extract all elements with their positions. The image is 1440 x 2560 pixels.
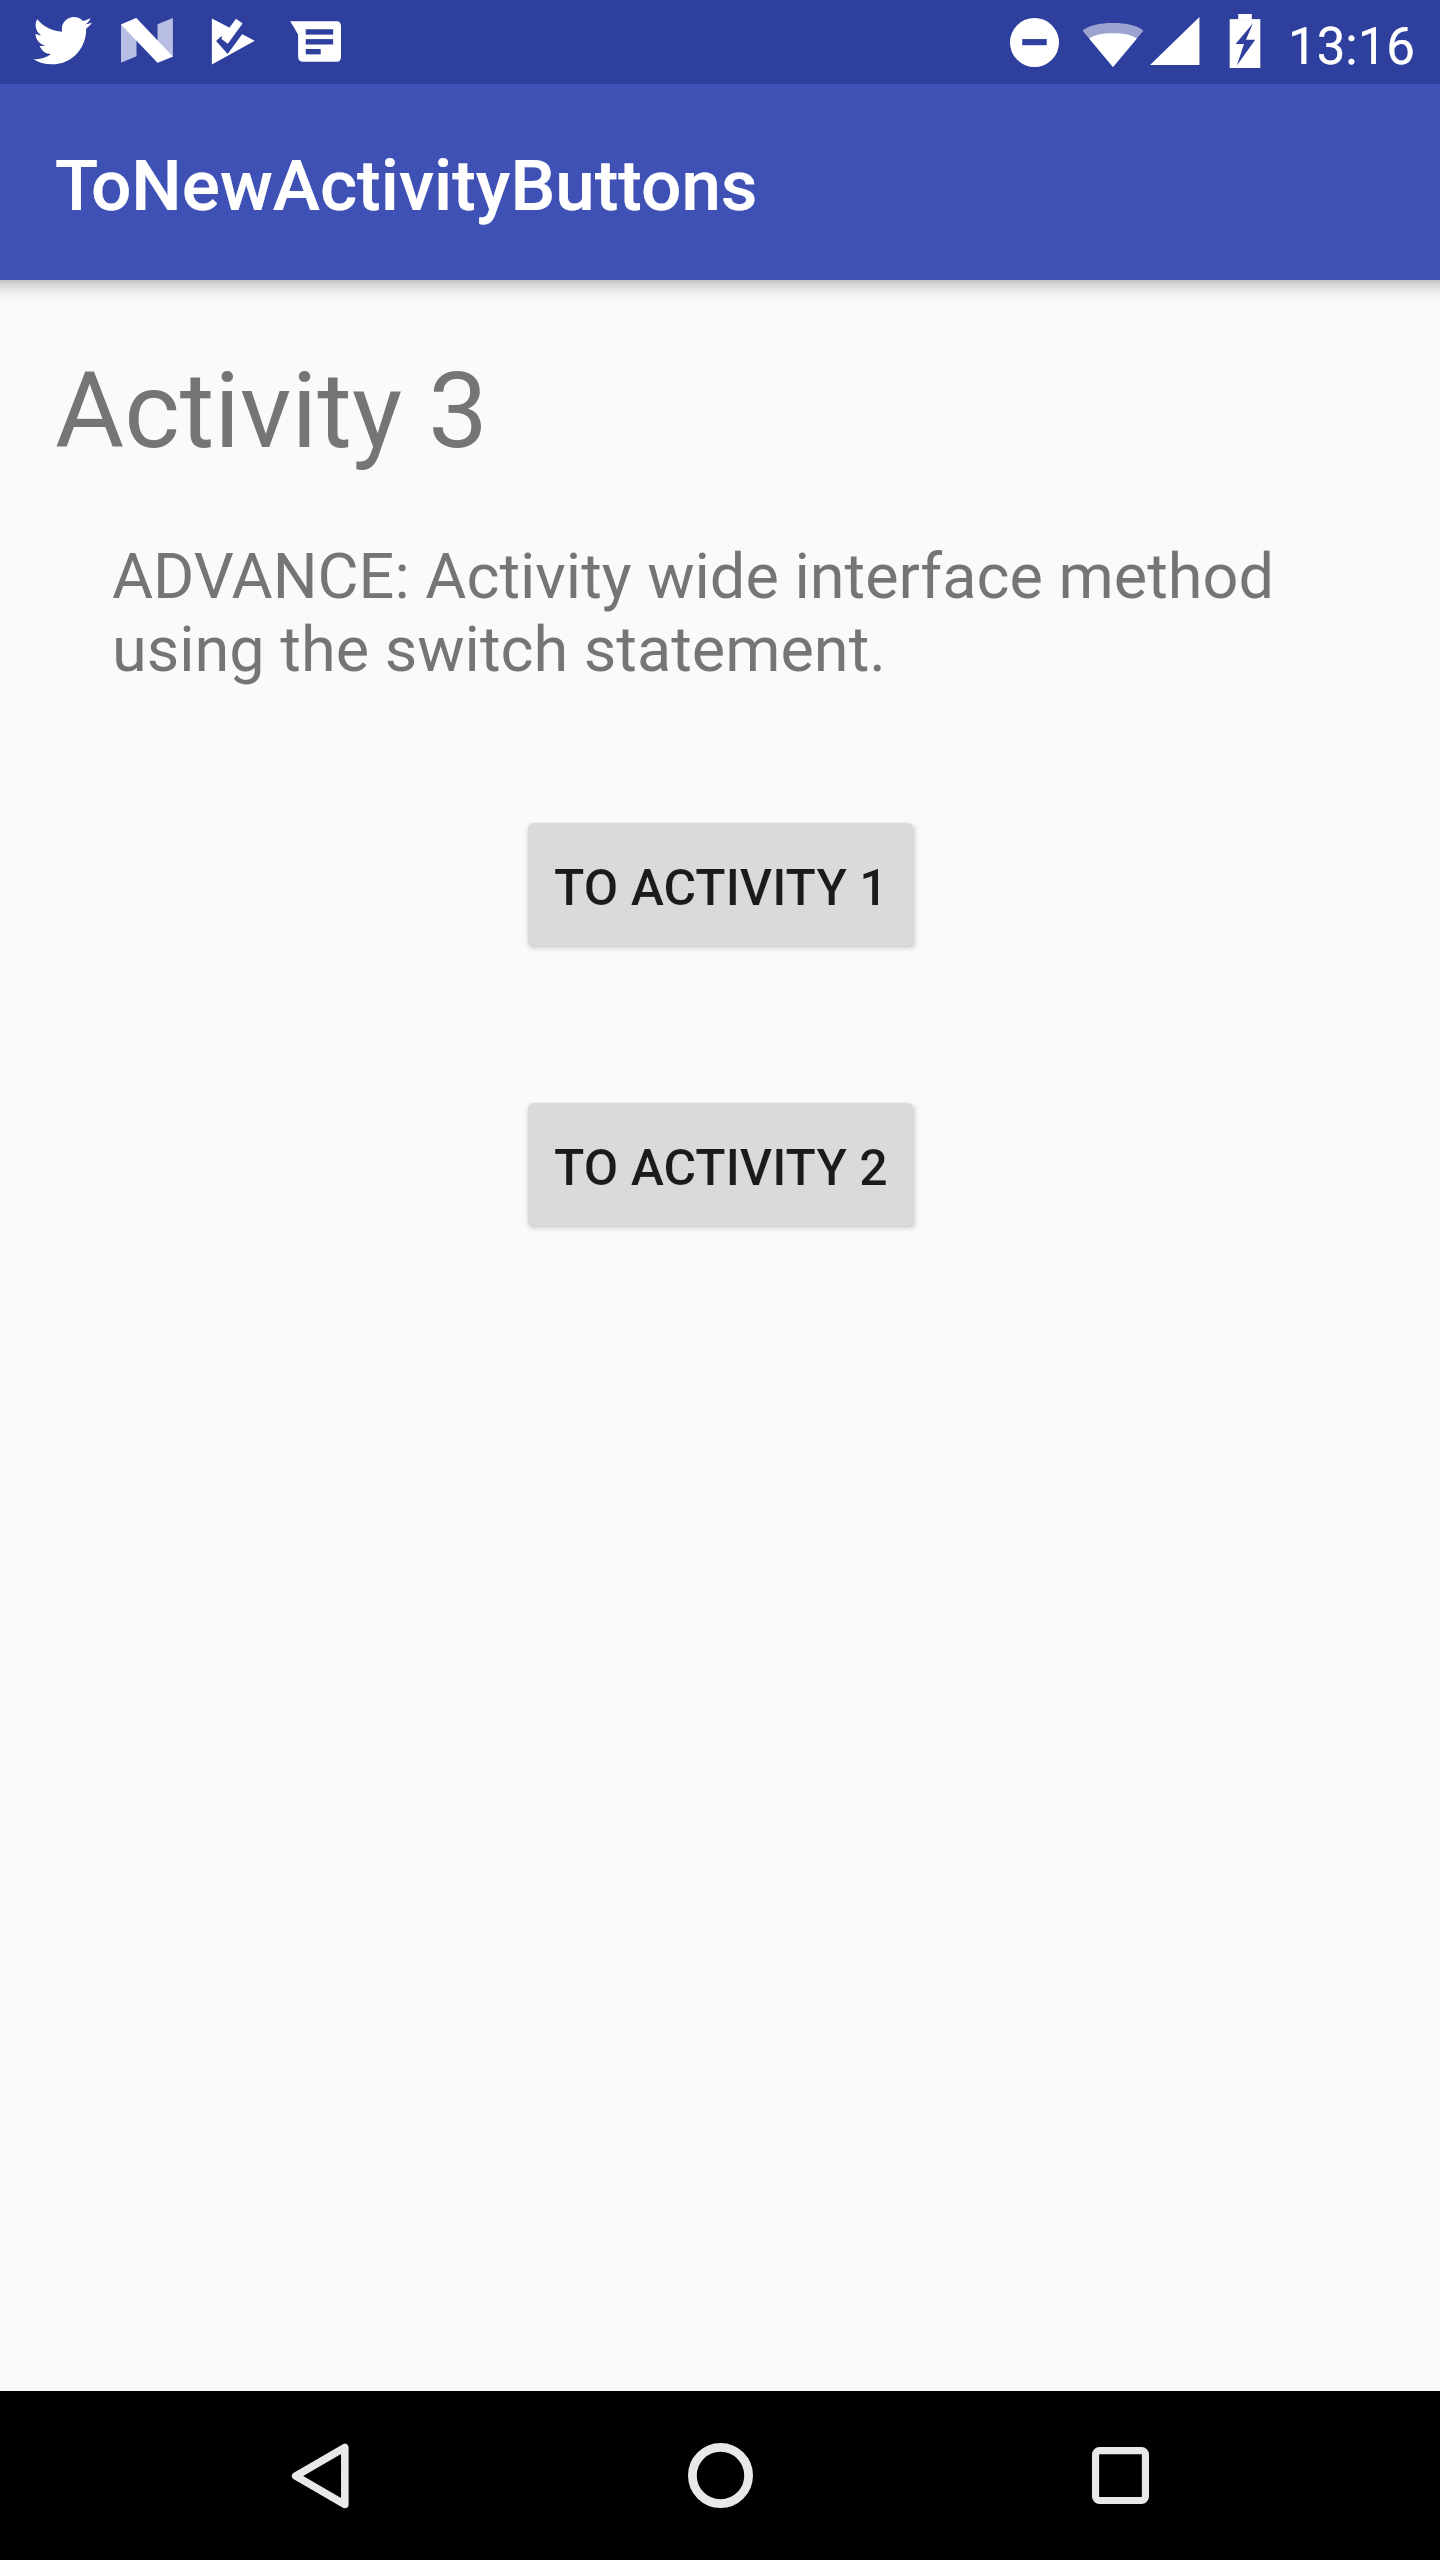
- staticText: TO ACTIVITY 2: [554, 1139, 888, 1198]
- staticText: ToNewActivityButtons: [55, 144, 758, 227]
- staticText: 13:16: [1288, 17, 1416, 77]
- staticText: ADVANCE: Activity wide interface method …: [112, 540, 1328, 686]
- button[interactable]: Recent apps: [1040, 2391, 1200, 2560]
- button[interactable]: TO ACTIVITY 2: [528, 1103, 913, 1226]
- staticText: TO ACTIVITY 1: [554, 859, 888, 918]
- staticText: Activity 3: [55, 349, 488, 473]
- button[interactable]: Home: [640, 2391, 800, 2560]
- button[interactable]: Back: [240, 2391, 400, 2560]
- button[interactable]: TO ACTIVITY 1: [528, 823, 913, 946]
